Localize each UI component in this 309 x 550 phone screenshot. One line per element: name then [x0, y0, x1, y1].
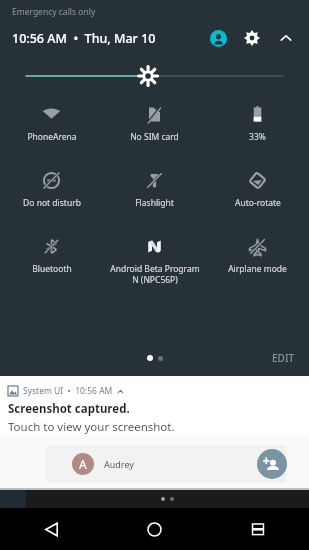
- staticText: Touch to view your screenshot.: [8, 419, 175, 435]
- button[interactable]: Android Beta Program N (NPC56P): [103, 235, 206, 287]
- staticText: Do not disturb: [23, 197, 81, 209]
- staticText: Screenshot captured.: [8, 401, 130, 417]
- staticText: System UI • 10:56 AM: [23, 385, 113, 397]
- button[interactable]: Airplane mode: [206, 235, 309, 277]
- staticText: No SIM card: [130, 131, 179, 143]
- button[interactable]: Settings: [239, 25, 265, 51]
- button[interactable]: A: [46, 446, 287, 482]
- button[interactable]: 33%: [206, 103, 309, 145]
- staticText: Android Beta Program N (NPC56P): [110, 263, 200, 285]
- staticText: Flashlight: [135, 197, 174, 209]
- button[interactable]: Collapse: [273, 25, 299, 51]
- staticText: 33%: [249, 131, 266, 143]
- staticText: Bluetooth: [32, 263, 72, 275]
- button[interactable]: Recents: [206, 508, 309, 550]
- button[interactable]: Back: [0, 508, 103, 550]
- button[interactable]: User: [205, 25, 231, 51]
- button[interactable]: Auto-rotate: [206, 169, 309, 211]
- button[interactable]: EDIT: [258, 346, 309, 370]
- button[interactable]: Home: [103, 508, 206, 550]
- button[interactable]: System UI • 10:56 AM: [0, 376, 309, 435]
- staticText: 10:56 AM • Thu, Mar 10: [12, 30, 156, 47]
- button[interactable]: Flashlight: [103, 169, 206, 211]
- staticText: Airplane mode: [228, 263, 287, 275]
- staticText: EDIT: [272, 351, 295, 365]
- staticText: PhoneArena: [27, 131, 77, 143]
- button[interactable]: Bluetooth: [0, 235, 103, 277]
- button[interactable]: No SIM card: [103, 103, 206, 145]
- staticText: Emergency calls only: [12, 6, 96, 18]
- button[interactable]: Do not disturb: [0, 169, 103, 211]
- staticText: A: [79, 456, 87, 472]
- button[interactable]: Add person: [257, 449, 287, 479]
- button[interactable]: Brightness: [26, 65, 283, 87]
- button[interactable]: PhoneArena: [0, 103, 103, 145]
- staticText: Audrey: [104, 458, 134, 470]
- staticText: Auto-rotate: [235, 197, 281, 209]
